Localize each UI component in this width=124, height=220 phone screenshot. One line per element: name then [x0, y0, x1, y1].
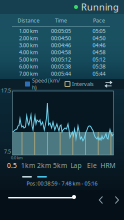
staticText: 00:05:38: [51, 63, 71, 70]
button[interactable]: Next: [112, 195, 122, 205]
staticText: 05:05: [92, 27, 105, 35]
button[interactable]: Swap chart axes: [103, 79, 114, 89]
staticText: HRM: [100, 161, 115, 170]
button[interactable]: Ele: [84, 161, 100, 170]
staticText: 04:50: [92, 35, 105, 42]
staticText: Time: [55, 17, 67, 24]
staticText: 5km: [53, 161, 67, 170]
staticText: Intervals: [72, 80, 94, 88]
staticText: 05:12: [92, 56, 105, 63]
button[interactable]: Previous: [96, 195, 106, 205]
staticText: 05:38: [92, 63, 105, 70]
staticText: 05:44: [92, 70, 105, 77]
staticText: Pace: [93, 17, 105, 24]
staticText: Distance: [17, 17, 39, 24]
staticText: 2km: [37, 161, 51, 170]
staticText: Lap: [70, 161, 81, 170]
staticText: 17.5: [1, 87, 11, 94]
staticText: 0.0 km: [11, 155, 23, 160]
staticText: 7.00 km: [19, 70, 38, 77]
staticText: 00:05:12: [51, 56, 71, 63]
staticText: 1km: [21, 161, 35, 170]
staticText: 00:04:46: [51, 42, 71, 49]
staticText: 6.00 km: [19, 63, 38, 70]
staticText: 00:04:50: [51, 35, 71, 42]
staticText: Pos: 00:38:59 - 7.48 km - 05:16: [26, 180, 97, 187]
staticText: Speed (km/h): [32, 77, 60, 91]
staticText: 4.00 km: [19, 49, 38, 56]
staticText: 3.00 km: [19, 42, 38, 49]
staticText: 00:05:44: [51, 70, 71, 77]
button[interactable]: 0.5: [4, 161, 20, 170]
staticText: Running: [81, 1, 119, 13]
staticText: 00:04:58: [51, 49, 71, 56]
staticText: 04:58: [92, 49, 105, 56]
button[interactable]: Lap: [68, 161, 84, 170]
staticText: 1.00 km: [19, 27, 38, 35]
staticText: 00:05:05: [51, 27, 71, 35]
staticText: 7.5: [4, 148, 11, 155]
button[interactable]: 1km: [20, 161, 36, 170]
staticText: Ele: [87, 161, 97, 170]
staticText: 5.00 km: [19, 56, 38, 63]
staticText: 04:46: [92, 42, 105, 49]
staticText: 0.5: [7, 161, 17, 170]
button[interactable]: 5km: [52, 161, 68, 170]
staticText: 2.00 km: [19, 35, 38, 42]
button[interactable]: 2km: [36, 161, 52, 170]
button[interactable]: HRM: [100, 161, 116, 170]
